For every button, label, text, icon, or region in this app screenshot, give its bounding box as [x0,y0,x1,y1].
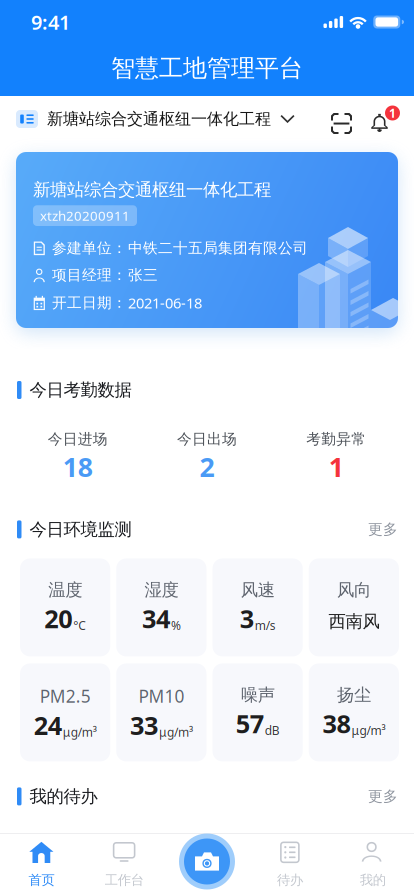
staticText: 更多 [368,787,398,805]
staticText: 新塘站综合交通枢纽一体化工程 [47,109,271,129]
staticText: 1 [329,449,344,484]
button[interactable]: 首页 [0,833,83,896]
staticText: μg/m³ [159,724,193,740]
staticText: 首页 [28,872,54,888]
button[interactable]: 待办 [248,833,331,896]
button[interactable]: 更多 [368,787,398,805]
staticText: 57 [236,707,264,740]
staticText: 待办 [277,872,303,888]
staticText: 考勤异常 [306,430,366,448]
staticText: 张三 [128,266,158,284]
staticText: 33 [130,708,158,742]
staticText: 1 [389,105,396,121]
staticText: 20 [44,602,72,635]
staticText: 更多 [368,520,398,538]
button[interactable]: 更多 [368,520,398,538]
staticText: 开工日期： [52,294,127,312]
button[interactable]: 扫一扫 [329,104,352,134]
staticText: 2 [199,449,214,484]
button[interactable]: 消息通知 [370,105,400,132]
staticText: 中铁二十五局集团有限公司 [128,239,308,257]
staticText: PM2.5 [40,684,91,707]
staticText: μg/m³ [63,724,97,740]
staticText: 湿度 [144,579,178,601]
staticText: 温度 [48,579,82,601]
staticText: 智慧工地管理平台 [111,53,303,83]
button[interactable]: 我的 [331,833,414,896]
staticText: 我的待办 [29,786,97,807]
staticText: % [171,617,181,633]
button[interactable]: 拍照 [179,833,235,889]
staticText: 项目经理： [52,266,127,284]
button[interactable]: 工作台 [83,833,166,896]
staticText: 今日环境监测 [29,519,131,540]
staticText: 今日考勤数据 [29,379,131,401]
staticText: 今日进场 [48,430,108,448]
staticText: 新塘站综合交通枢纽一体化工程 [33,179,271,200]
staticText: 38 [322,707,350,740]
staticText: 今日出场 [177,430,237,448]
staticText: 工作台 [105,872,144,888]
staticText: 噪声 [241,684,275,706]
staticText: PM10 [138,684,184,707]
staticText: 18 [63,449,93,484]
staticText: 西南风 [328,611,379,632]
staticText: 2021-06-18 [128,293,202,312]
staticText: 34 [142,602,170,635]
staticText: μg/m³ [351,722,385,738]
staticText: 风速 [241,579,275,601]
staticText: xtzh20200911 [40,207,130,224]
staticText: dB [265,722,280,738]
staticText: m/s [255,617,276,633]
staticText: 参建单位： [52,239,127,257]
staticText: °C [73,617,86,633]
staticText: 9:41 [31,9,70,35]
staticText: 风向 [337,579,371,601]
staticText: 我的 [360,872,386,888]
staticText: 24 [34,708,62,742]
staticText: 3 [240,602,254,635]
staticText: 扬尘 [337,684,371,706]
